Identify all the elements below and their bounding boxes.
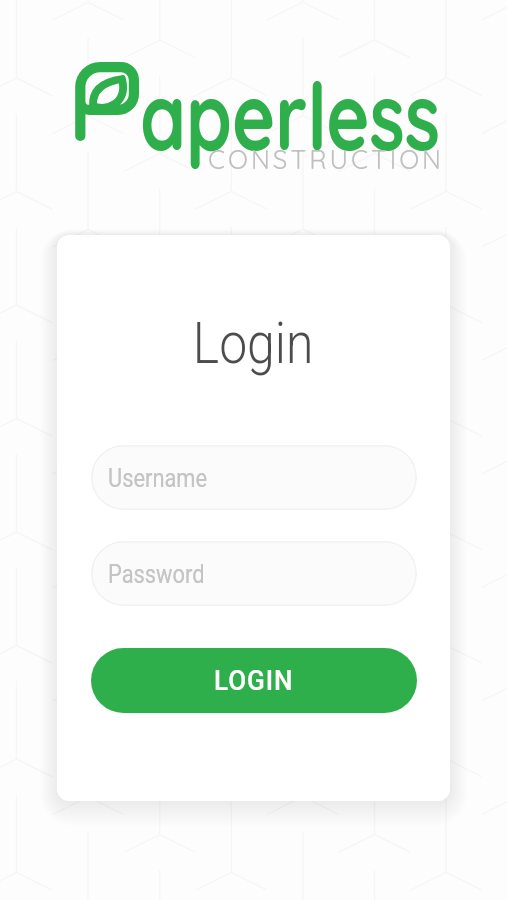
staticText: Username [108, 463, 207, 493]
button[interactable]: Username [91, 445, 417, 510]
staticText: CONSTRUCTION [208, 143, 444, 176]
button[interactable]: Password [91, 541, 417, 606]
staticText: Password [108, 559, 205, 589]
staticText: Login [193, 309, 314, 377]
staticText: aperless [140, 56, 440, 174]
button[interactable]: LOGIN [91, 648, 417, 713]
staticText: LOGIN [214, 664, 294, 697]
